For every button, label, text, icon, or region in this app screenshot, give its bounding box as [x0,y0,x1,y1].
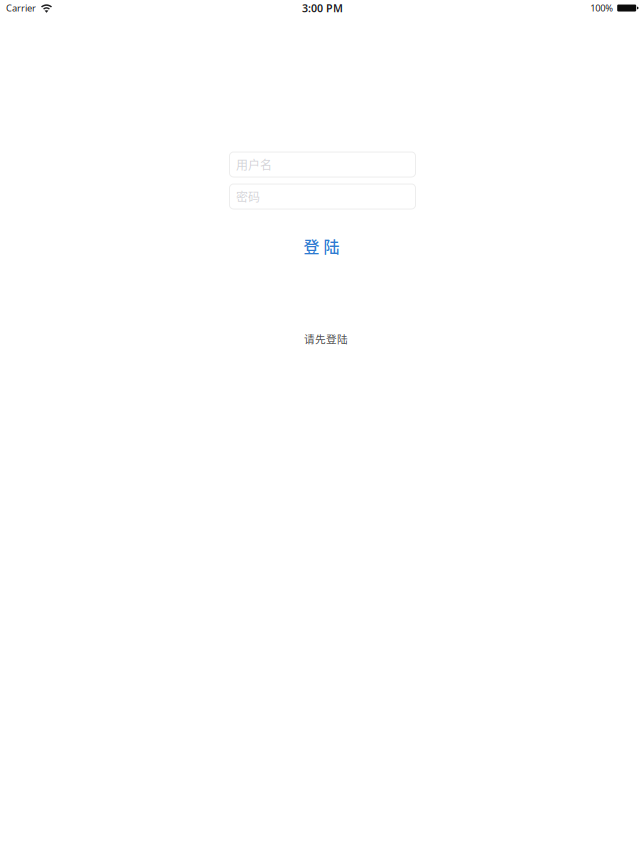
button[interactable]: 密码 [227,184,415,209]
staticText: Carrier [6,2,36,14]
staticText: 3:00 PM [302,1,343,15]
staticText: 请先登陆 [304,331,348,346]
staticText: 用户名 [236,156,272,173]
staticText: 登 陆 [303,234,339,258]
button[interactable]: 登 陆 [228,232,414,260]
staticText: 密码 [236,188,260,205]
button[interactable]: 用户名 [227,152,415,177]
staticText: 100% [590,2,613,14]
